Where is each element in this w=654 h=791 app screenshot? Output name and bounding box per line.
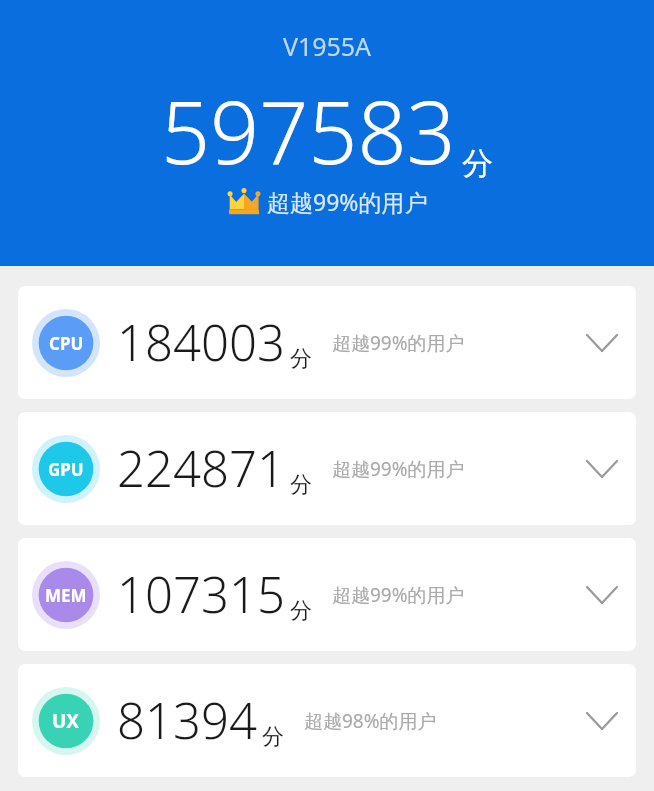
staticText: 超越99%的用户	[332, 582, 465, 608]
button[interactable]: MEM	[18, 538, 636, 651]
staticText: 分	[290, 597, 312, 625]
button[interactable]: CPU	[18, 286, 636, 399]
button[interactable]: Expand UX details	[576, 695, 628, 747]
staticText: UX	[52, 708, 80, 734]
staticText: 分	[290, 471, 312, 499]
staticText: 184003	[117, 309, 285, 376]
staticText: 分	[290, 345, 312, 373]
staticText: 超越98%的用户	[304, 708, 437, 734]
staticText: V1955A	[0, 29, 654, 63]
staticText: 分	[462, 144, 493, 183]
button[interactable]: Expand MEM details	[576, 569, 628, 621]
staticText: CPU	[49, 332, 84, 355]
button[interactable]: GPU	[18, 412, 636, 525]
button[interactable]: Expand GPU details	[576, 443, 628, 495]
button[interactable]: Expand CPU details	[576, 317, 628, 369]
staticText: 超越99%的用户	[267, 186, 428, 217]
staticText: 597583	[161, 72, 456, 189]
staticText: 107315	[117, 561, 285, 628]
staticText: MEM	[45, 584, 87, 607]
staticText: 超越99%的用户	[332, 330, 465, 356]
staticText: 224871	[117, 435, 285, 502]
staticText: 分	[262, 723, 284, 751]
staticText: GPU	[48, 458, 84, 481]
staticText: 81394	[117, 687, 257, 754]
staticText: 超越99%的用户	[332, 456, 465, 482]
button[interactable]: UX	[18, 664, 636, 777]
